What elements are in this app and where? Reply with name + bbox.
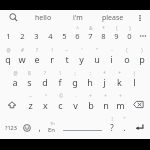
staticText: ? xyxy=(36,47,38,53)
button[interactable]: ~ xyxy=(59,47,74,70)
button[interactable]: please xyxy=(95,10,130,25)
button[interactable]: More symbols xyxy=(136,25,149,47)
button[interactable]: 3 xyxy=(29,25,43,47)
button[interactable]: ! xyxy=(106,116,118,139)
button[interactable]: 1 xyxy=(1,25,15,47)
button[interactable]: @ xyxy=(1,47,15,70)
button[interactable]: ~ xyxy=(23,93,38,116)
staticText: : xyxy=(89,70,91,76)
staticText: v xyxy=(73,99,78,111)
staticText: & xyxy=(89,25,93,31)
button[interactable]: ; xyxy=(67,70,82,93)
staticText: c xyxy=(58,99,63,111)
button[interactable]: © xyxy=(53,93,68,116)
button[interactable]: Enter xyxy=(130,116,149,139)
button[interactable]: - xyxy=(104,47,119,70)
staticText: m xyxy=(116,99,125,111)
button[interactable]: ? xyxy=(29,47,44,70)
staticText: En xyxy=(48,126,56,134)
button[interactable]: Th xyxy=(45,116,59,139)
button[interactable]: Search xyxy=(0,10,26,25)
staticText: hello xyxy=(35,13,52,23)
button[interactable]: ß xyxy=(22,70,37,93)
staticText: ! xyxy=(51,47,53,53)
staticText: 5 xyxy=(62,31,67,41)
staticText: , xyxy=(38,122,41,133)
staticText: z xyxy=(28,99,33,111)
staticText: ( xyxy=(116,25,118,31)
button[interactable]: 2 xyxy=(15,25,29,47)
staticText: x xyxy=(43,99,48,111)
button[interactable]: + xyxy=(112,70,127,93)
staticText: k xyxy=(117,76,122,88)
button[interactable]: Backspace xyxy=(128,93,149,116)
button[interactable]: ? xyxy=(37,70,52,93)
staticText: " xyxy=(96,47,98,53)
staticText: 0 xyxy=(127,31,132,41)
staticText: ~ xyxy=(29,93,32,99)
button[interactable]: | xyxy=(127,70,142,93)
button[interactable]: " xyxy=(89,47,104,70)
staticText: - xyxy=(111,47,113,53)
button[interactable]: ^ xyxy=(71,25,84,47)
button[interactable]: * xyxy=(97,70,112,93)
button[interactable]: @ xyxy=(8,70,22,93)
staticText: s xyxy=(27,76,32,88)
staticText: a xyxy=(12,76,18,88)
button[interactable]: Emoji xyxy=(20,116,34,139)
staticText: 2 xyxy=(20,31,25,41)
button[interactable]: + xyxy=(98,93,113,116)
staticText: 7 xyxy=(88,31,93,41)
button[interactable]: 4 xyxy=(43,25,57,47)
button[interactable]: # xyxy=(15,47,29,70)
button[interactable]: ! xyxy=(44,47,59,70)
staticText: ) xyxy=(141,47,143,53)
staticText: h xyxy=(87,76,93,88)
staticText: 8 xyxy=(101,31,106,41)
staticText: g xyxy=(72,76,78,88)
button[interactable]: ( xyxy=(110,25,123,47)
button[interactable]: ) xyxy=(134,47,149,70)
staticText: 1 xyxy=(6,31,11,41)
button[interactable]: ° xyxy=(38,93,53,116)
staticText: i xyxy=(110,53,113,65)
button[interactable]: '' xyxy=(118,116,130,139)
button[interactable]: i'm xyxy=(60,10,95,25)
staticText: d xyxy=(42,76,48,88)
button[interactable]: hello xyxy=(26,10,60,25)
staticText: n xyxy=(103,99,109,111)
staticText: '' xyxy=(123,116,126,122)
staticText: e xyxy=(34,53,40,65)
button[interactable]: More suggestions xyxy=(130,10,150,25)
staticText: + xyxy=(118,70,121,76)
button[interactable]: * xyxy=(97,25,110,47)
button[interactable]: Shift xyxy=(1,93,23,116)
button[interactable]: & xyxy=(84,25,97,47)
button[interactable]: ?123 xyxy=(1,116,20,139)
staticText: ~ xyxy=(65,47,68,53)
staticText: j xyxy=(103,76,106,88)
staticText: . xyxy=(123,122,126,133)
button[interactable]: Space xyxy=(59,116,106,139)
staticText: l xyxy=(133,76,136,88)
button[interactable]: ) xyxy=(123,25,136,47)
staticText: · xyxy=(75,93,77,99)
staticText: q xyxy=(5,53,11,65)
staticText: ' xyxy=(81,47,83,53)
button[interactable]: : xyxy=(82,70,97,93)
button[interactable]: ( xyxy=(119,47,134,70)
staticText: ß xyxy=(28,70,31,76)
staticText: + xyxy=(119,93,122,99)
staticText: b xyxy=(88,99,94,111)
button[interactable]: + xyxy=(113,93,128,116)
button[interactable]: ! xyxy=(52,70,67,93)
button[interactable]: ' xyxy=(74,47,89,70)
staticText: 4 xyxy=(48,31,53,41)
staticText: r xyxy=(50,53,54,65)
button[interactable]: · xyxy=(68,93,83,116)
button[interactable]: 5 xyxy=(57,25,71,47)
staticText: Th xyxy=(50,121,55,126)
button[interactable]: + xyxy=(83,93,98,116)
button[interactable]: , xyxy=(34,116,45,139)
staticText: ° xyxy=(45,93,47,99)
